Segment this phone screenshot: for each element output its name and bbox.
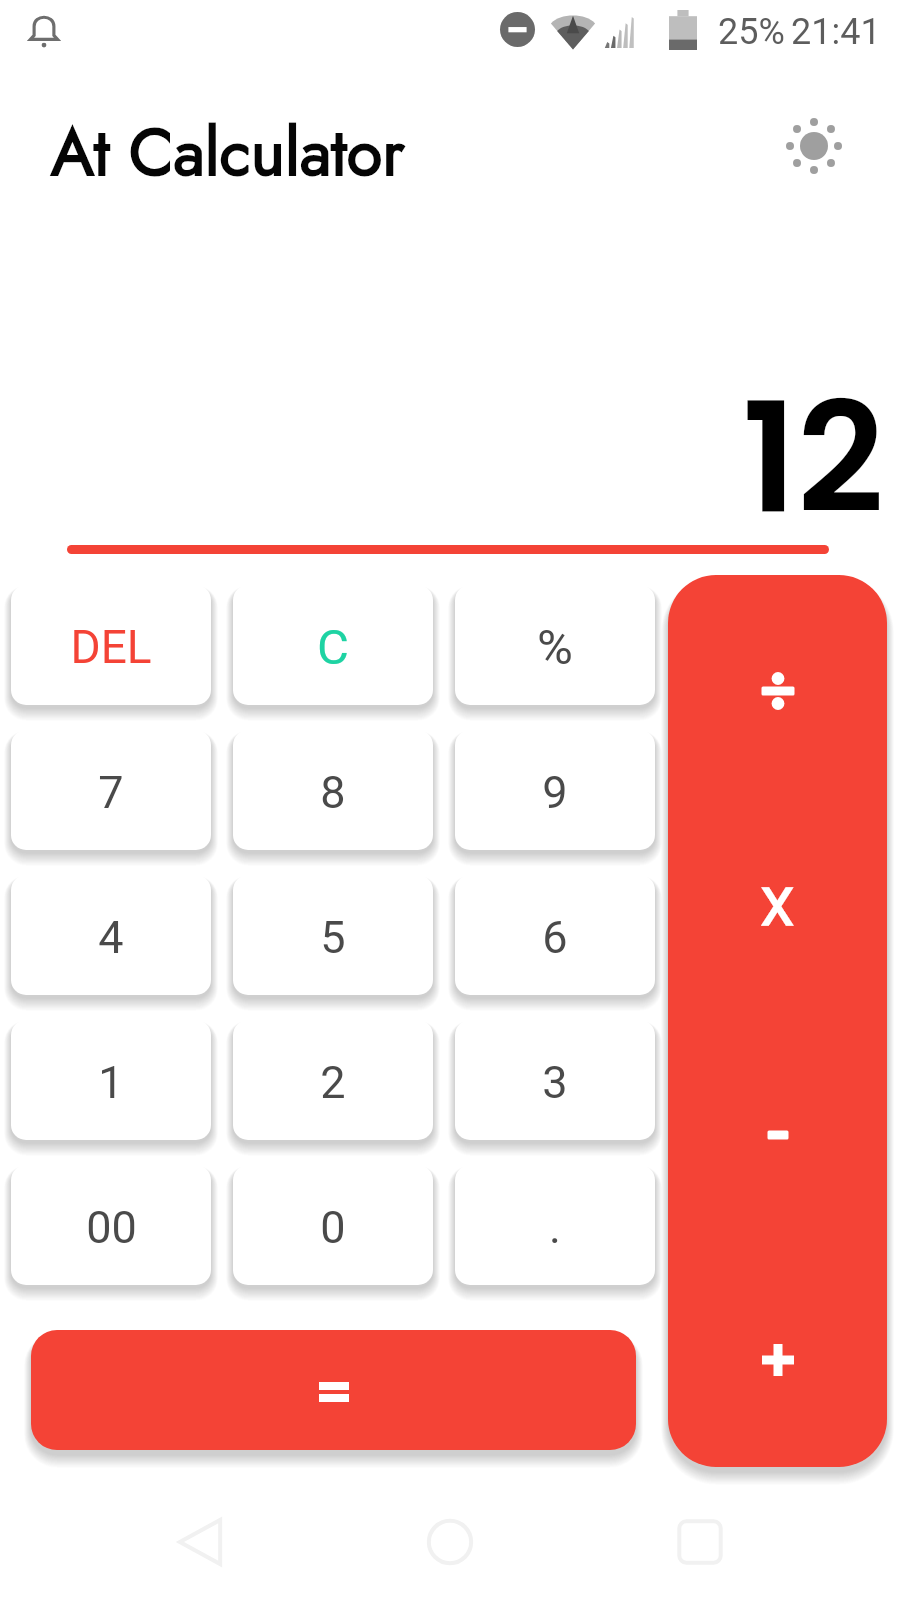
- button[interactable]: 4: [11, 875, 211, 995]
- staticText: 7: [98, 766, 124, 819]
- button[interactable]: 2: [233, 1020, 433, 1140]
- staticText: DEL: [70, 620, 152, 674]
- staticText: 1: [98, 1056, 124, 1109]
- button[interactable]: 8: [233, 730, 433, 850]
- staticText: 12: [742, 352, 885, 522]
- button[interactable]: Home: [405, 1497, 495, 1587]
- button[interactable]: Recents: [655, 1497, 745, 1587]
- button[interactable]: Subtract: [668, 1021, 887, 1244]
- staticText: 5: [320, 911, 346, 964]
- staticText: .: [549, 1201, 561, 1254]
- button[interactable]: 00: [11, 1165, 211, 1285]
- button[interactable]: Back: [155, 1497, 245, 1587]
- button[interactable]: 6: [455, 875, 655, 995]
- button[interactable]: [31, 1330, 636, 1450]
- button[interactable]: 0: [233, 1165, 433, 1285]
- button[interactable]: 5: [233, 875, 433, 995]
- button[interactable]: .: [455, 1165, 655, 1285]
- button[interactable]: 7: [11, 730, 211, 850]
- button[interactable]: DEL: [11, 585, 211, 705]
- button[interactable]: C: [233, 585, 433, 705]
- staticText: 2: [320, 1056, 346, 1109]
- button[interactable]: 3: [455, 1020, 655, 1140]
- staticText: At Calculator: [51, 105, 405, 199]
- button[interactable]: Divide: [668, 575, 887, 798]
- staticText: 0: [320, 1201, 346, 1254]
- staticText: C: [317, 619, 349, 676]
- staticText: X: [761, 877, 794, 938]
- staticText: 4: [98, 911, 124, 964]
- button[interactable]: Add: [668, 1244, 887, 1467]
- button[interactable]: 1: [11, 1020, 211, 1140]
- staticText: 25%: [718, 11, 785, 53]
- staticText: 6: [542, 911, 568, 964]
- staticText: 3: [542, 1056, 568, 1109]
- staticText: 00: [86, 1201, 137, 1254]
- staticText: 9: [542, 766, 568, 819]
- staticText: 21:41: [791, 11, 881, 53]
- staticText: 8: [320, 766, 346, 819]
- button[interactable]: %: [455, 585, 655, 705]
- staticText: %: [537, 619, 573, 676]
- button[interactable]: Toggle theme: [778, 110, 850, 182]
- button[interactable]: 9: [455, 730, 655, 850]
- button[interactable]: Multiply: [668, 798, 887, 1021]
